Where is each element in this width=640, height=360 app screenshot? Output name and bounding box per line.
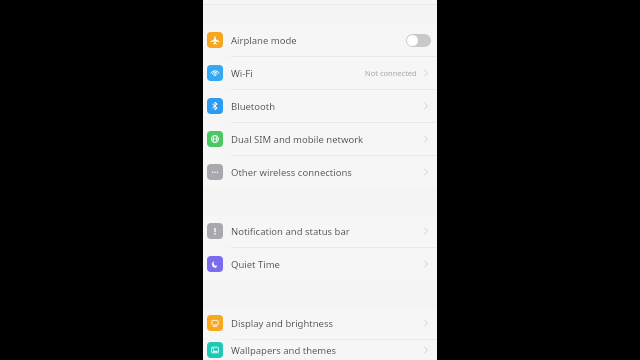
staticText: Wi-Fi [231, 67, 365, 80]
staticText: Dual SIM and mobile network [231, 133, 421, 146]
button[interactable]: Wallpapers and themes [203, 340, 437, 360]
button[interactable]: Airplane mode toggle [406, 34, 431, 47]
button[interactable]: Dual SIM and mobile network [203, 123, 437, 155]
button[interactable]: Notification and status bar [203, 215, 437, 247]
button[interactable]: Other wireless connections [203, 156, 437, 188]
staticText: Wallpapers and themes [231, 344, 421, 357]
button[interactable]: Wi-Fi [203, 57, 437, 89]
staticText: Airplane mode [231, 34, 406, 47]
staticText: Not connected [365, 68, 417, 78]
staticText: Display and brightness [231, 317, 421, 330]
button[interactable]: Airplane mode [203, 24, 437, 56]
staticText: Bluetooth [231, 100, 421, 113]
button[interactable]: Quiet Time [203, 248, 437, 280]
staticText: Quiet Time [231, 258, 421, 271]
button[interactable]: Display and brightness [203, 307, 437, 339]
staticText: Other wireless connections [231, 166, 421, 179]
button[interactable]: Bluetooth [203, 90, 437, 122]
staticText: Notification and status bar [231, 225, 421, 238]
